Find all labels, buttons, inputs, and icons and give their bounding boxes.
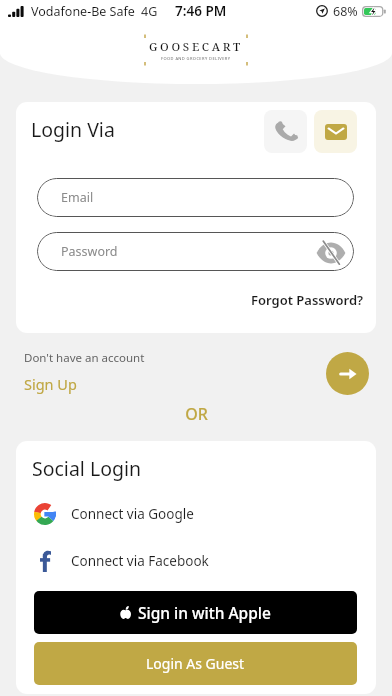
button[interactable]: Password	[37, 232, 354, 271]
button[interactable]: Login As Guest	[34, 642, 357, 685]
staticText: Sign in with Apple	[138, 602, 271, 623]
staticText: Password	[61, 243, 118, 260]
staticText: Social Login	[32, 455, 142, 482]
staticText: OR	[185, 403, 208, 425]
staticText: Vodafone-Be Safe	[31, 3, 135, 20]
staticText: Don't have an account	[24, 350, 145, 366]
staticText: GOOSECART	[149, 39, 243, 55]
button[interactable]: Sign in with Apple	[34, 591, 357, 634]
button[interactable]: Forgot Password?	[251, 291, 364, 309]
button[interactable]: Sign Up	[24, 374, 77, 394]
staticText: 4G	[141, 3, 158, 20]
button[interactable]: Connect via Facebook	[34, 548, 334, 574]
button[interactable]: Connect via Google	[34, 501, 334, 527]
staticText: FOOD AND GROCERY DELIVERY	[161, 56, 231, 61]
button[interactable]: Login via phone	[264, 110, 307, 153]
staticText: Email	[61, 189, 94, 206]
button[interactable]: Continue	[326, 352, 369, 395]
button[interactable]: Email	[37, 178, 354, 217]
staticText: 68%	[333, 3, 358, 20]
staticText: Connect via Facebook	[71, 552, 209, 570]
staticText: Login Via	[31, 116, 115, 143]
staticText: 7:46 PM	[175, 2, 227, 20]
button[interactable]: Login via email	[314, 110, 357, 153]
staticText: Login As Guest	[146, 654, 245, 673]
staticText: Connect via Google	[71, 505, 194, 523]
